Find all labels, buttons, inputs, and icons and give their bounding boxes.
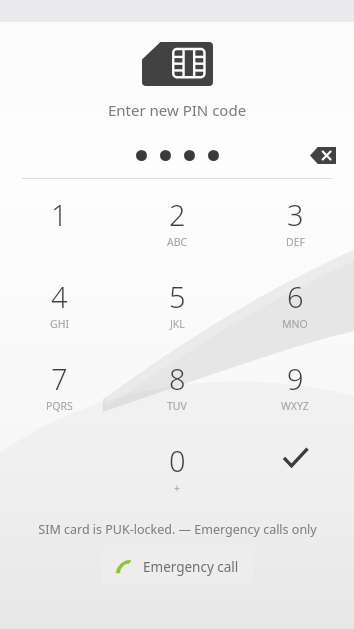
button[interactable]: 6 [236,277,354,333]
staticText: 6 [287,277,304,316]
staticText: 4 [51,277,68,316]
button[interactable]: 9 [236,359,354,415]
staticText: 0 [169,441,186,480]
button[interactable]: 8 [118,359,236,415]
staticText: 3 [287,195,304,234]
staticText: Emergency call [143,558,239,576]
staticText: MNO [282,317,308,331]
staticText: 5 [169,277,186,316]
button[interactable]: 1 [0,195,118,251]
staticText: PQRS [46,399,73,413]
button[interactable]: Confirm [236,441,354,497]
button[interactable]: Emergency call [101,550,253,584]
staticText: Enter new PIN code [108,100,247,120]
staticText: DEF [286,235,305,249]
staticText: ABC [167,235,188,249]
button[interactable]: 4 [0,277,118,333]
button[interactable]: 2 [118,195,236,251]
staticText: 7 [51,359,68,398]
staticText: JKL [170,317,185,331]
button[interactable]: 7 [0,359,118,415]
staticText: SIM card is PUK-locked. — Emergency call… [38,521,317,538]
staticText: 8 [169,359,186,398]
staticText: TUV [167,399,187,413]
staticText: 9 [287,359,304,398]
button[interactable]: 3 [236,195,354,251]
staticText: WXYZ [281,399,309,413]
staticText: GHI [50,317,69,331]
button[interactable]: Delete [306,141,340,169]
button[interactable]: 5 [118,277,236,333]
other: SIM card [142,42,213,86]
staticText: 2 [169,195,186,234]
staticText: + [174,481,181,495]
button[interactable]: 0 [118,441,236,497]
staticText: 1 [51,195,68,234]
